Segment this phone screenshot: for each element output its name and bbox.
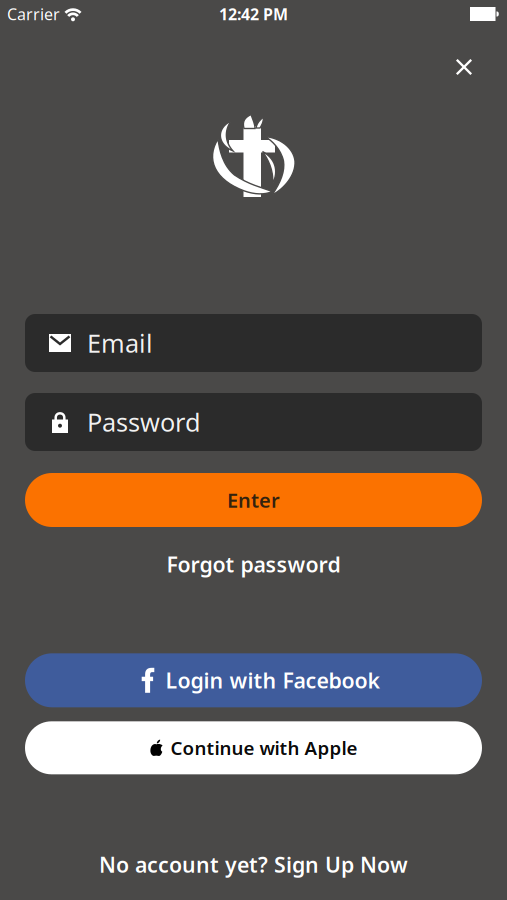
button[interactable] <box>446 49 482 85</box>
staticText: Carrier <box>7 3 60 25</box>
staticText: 12:42 PM <box>219 3 288 25</box>
staticText: Login with Facebook <box>165 666 380 694</box>
staticText: Password <box>87 405 201 439</box>
staticText: No account yet? Sign Up Now <box>99 850 408 879</box>
button[interactable]: Email <box>25 314 482 372</box>
staticText: Email <box>87 326 153 360</box>
button[interactable]: No account yet? Sign Up Now <box>99 844 408 885</box>
button[interactable]: Continue with Apple <box>25 721 482 774</box>
staticText: Continue with Apple <box>170 735 357 760</box>
staticText: Enter <box>227 487 280 513</box>
button[interactable]: Enter <box>25 473 482 527</box>
staticText: Forgot password <box>166 550 340 578</box>
button[interactable]: Forgot password <box>158 544 348 584</box>
button[interactable]: Password <box>25 393 482 451</box>
button[interactable]: Login with Facebook <box>25 653 482 707</box>
